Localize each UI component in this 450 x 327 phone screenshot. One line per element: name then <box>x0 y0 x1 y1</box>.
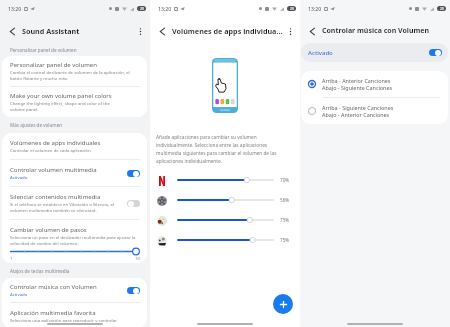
button[interactable]: Más opciones <box>284 25 296 37</box>
button[interactable]: Personalizar panel de volumen <box>2 56 147 86</box>
staticText: Más ajustes de volumen <box>10 122 63 128</box>
button[interactable]: Aplicación multimedia favorita <box>2 303 147 327</box>
staticText: Atajos de teclas multimedia <box>10 268 70 274</box>
staticText: 20 <box>140 6 144 11</box>
button[interactable]: Atrás <box>155 24 169 38</box>
button[interactable]: Más opciones <box>134 25 146 37</box>
staticText: Abajo - Anterior Canciones <box>322 111 390 118</box>
staticText: Si el teléfono se establece en Vibración… <box>10 201 122 213</box>
staticText: 56% <box>280 197 290 203</box>
staticText: Arriba - Anterior Canciones <box>322 77 391 84</box>
staticText: Selecciona una aplicación para reproduci… <box>10 317 117 322</box>
staticText: 75% <box>280 217 290 223</box>
staticText: Arriba - Siguiente Canciones <box>322 104 394 111</box>
staticText: Aplicación multimedia favorita <box>10 309 96 317</box>
button[interactable]: Desactivado <box>127 200 140 207</box>
staticText: 13:20 <box>158 5 172 12</box>
staticText: 13:20 <box>8 5 22 12</box>
button[interactable]: Controlar música con Volumen <box>2 278 147 302</box>
button[interactable]: Añadir aplicación <box>273 294 293 314</box>
button[interactable]: Volúmenes de apps individuales <box>2 133 147 159</box>
staticText: Activado <box>10 291 28 297</box>
button[interactable]: Silenciar contenidos multimedia <box>2 187 147 219</box>
button[interactable]: Activado <box>301 43 448 62</box>
staticText: Selecciona un paso en el deslizador mult… <box>10 234 140 246</box>
staticText: 10 <box>135 256 140 262</box>
staticText: Change the lighting effect, shape and co… <box>10 100 124 112</box>
staticText: Activado <box>308 49 429 57</box>
staticText: Sound Assistant <box>22 26 134 36</box>
staticText: Controlar música con Volumen <box>322 26 446 36</box>
button[interactable]: 56% <box>150 190 300 210</box>
staticText: Make your own volume panel colors <box>10 92 112 100</box>
staticText: Controlar el volumen de cada aplicación. <box>10 147 92 153</box>
button[interactable]: Activado <box>127 170 140 177</box>
staticText: Volúmenes de apps individual... <box>172 26 284 36</box>
button[interactable]: 70% <box>150 170 300 190</box>
staticText: Controlar música con Volumen <box>10 283 97 291</box>
button[interactable]: Atrás <box>305 24 319 38</box>
staticText: Cambiar volumen de pasos <box>10 226 87 234</box>
staticText: 75% <box>280 237 290 243</box>
button[interactable]: Arriba - Anterior Canciones <box>301 71 448 97</box>
staticText: Controlar volumen multimedia <box>10 166 97 174</box>
button[interactable]: Controlar volumen multimedia <box>2 160 147 186</box>
staticText: 20 <box>440 6 444 11</box>
staticText: Personalizar panel de volumen <box>10 61 97 69</box>
button[interactable]: Activado <box>429 49 442 56</box>
button[interactable]: Activado <box>127 287 140 294</box>
staticText: 70% <box>280 177 290 183</box>
staticText: 20 <box>290 6 294 11</box>
staticText: 1 <box>10 256 13 262</box>
staticText: Silenciar contenidos multimedia <box>10 193 101 201</box>
staticText: 13:20 <box>308 5 322 12</box>
staticText: Añade aplicaciones para cambiar su volum… <box>156 134 281 165</box>
staticText: Personalizar panel de volumen <box>10 47 77 53</box>
button[interactable]: Make your own volume panel colors <box>2 87 147 117</box>
button[interactable]: 75% <box>150 210 300 230</box>
button[interactable]: Atrás <box>5 24 19 38</box>
button[interactable]: Cambiar volumen de pasos <box>2 220 147 263</box>
staticText: Activado <box>10 174 28 180</box>
button[interactable]: 75% <box>150 230 300 250</box>
staticText: Abajo - Siguiente Canciones <box>322 84 393 91</box>
button[interactable]: Arriba - Siguiente Canciones <box>301 98 448 124</box>
staticText: Volúmenes de apps individuales <box>10 139 101 147</box>
staticText: Cambia el control deslizante de volumen … <box>10 69 136 81</box>
